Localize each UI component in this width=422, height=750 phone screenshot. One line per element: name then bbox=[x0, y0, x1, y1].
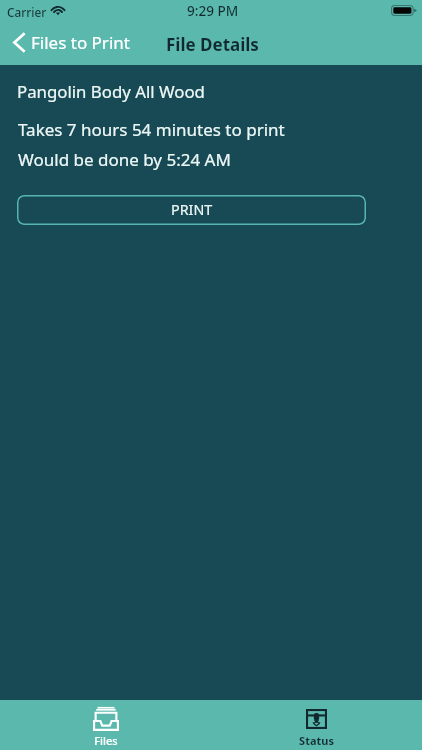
staticText: Pangolin Body All Wood bbox=[17, 80, 205, 103]
staticText: PRINT bbox=[171, 200, 213, 219]
staticText: Would be done by 5:24 AM bbox=[18, 148, 231, 171]
button[interactable]: Files bbox=[0, 700, 211, 750]
staticText: Carrier bbox=[7, 4, 47, 20]
other: Back bbox=[13, 32, 26, 53]
button[interactable]: Back bbox=[0, 29, 138, 56]
staticText: Status bbox=[299, 733, 334, 748]
button[interactable]: Status bbox=[211, 700, 422, 750]
staticText: Takes 7 hours 54 minutes to print bbox=[18, 118, 285, 141]
staticText: 9:29 PM bbox=[187, 1, 239, 20]
button[interactable]: PRINT bbox=[17, 195, 366, 225]
staticText: Files to Print bbox=[31, 31, 130, 54]
staticText: Files bbox=[94, 733, 118, 748]
staticText: File Details bbox=[166, 33, 259, 56]
